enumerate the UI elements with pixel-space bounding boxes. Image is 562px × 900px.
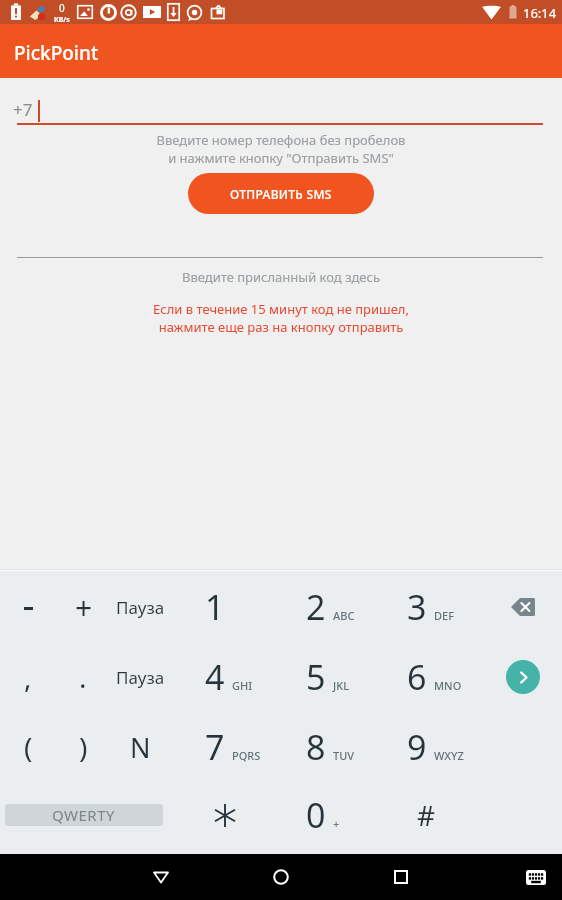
staticText: ,: [24, 658, 32, 696]
staticText: QWERTY: [52, 805, 116, 825]
button[interactable]: Пауза: [113, 575, 167, 639]
staticText: ОТПРАВИТЬ SMS: [230, 186, 332, 202]
staticText: Если в течение 15 минут код не пришел, н…: [0, 300, 562, 336]
button[interactable]: Keyboard: [516, 857, 556, 897]
staticText: 1: [205, 584, 225, 630]
button[interactable]: 2: [291, 574, 392, 640]
button[interactable]: 3: [392, 574, 493, 640]
staticText: N: [130, 729, 151, 766]
staticText: GHI: [232, 678, 253, 693]
button[interactable]: Star: [198, 783, 252, 847]
button[interactable]: Home: [252, 854, 310, 900]
staticText: Пауза: [116, 596, 165, 619]
button[interactable]: 7: [190, 714, 291, 780]
staticText: 16:14: [523, 4, 557, 22]
staticText: PickPoint: [14, 40, 99, 66]
button[interactable]: Minus: [1, 575, 55, 639]
button[interactable]: 8: [291, 714, 392, 780]
button[interactable]: 1: [190, 574, 291, 640]
staticText: 2: [306, 584, 326, 630]
staticText: +7: [13, 98, 33, 121]
button[interactable]: QWERTY: [5, 804, 163, 826]
button[interactable]: 4: [190, 644, 291, 710]
button[interactable]: ): [56, 715, 110, 779]
staticText: ABC: [333, 608, 355, 623]
button[interactable]: N: [113, 715, 167, 779]
button[interactable]: +: [57, 575, 111, 639]
staticText: 7: [205, 724, 225, 770]
button[interactable]: .: [56, 645, 110, 709]
staticText: WXYZ: [434, 748, 464, 763]
staticText: KB/s: [54, 15, 70, 25]
button[interactable]: #: [399, 783, 453, 847]
staticText: (: [24, 728, 33, 766]
button[interactable]: Пауза: [113, 645, 167, 709]
staticText: 0: [306, 792, 326, 838]
button[interactable]: ОТПРАВИТЬ SMS: [188, 173, 374, 214]
staticText: 3: [407, 584, 427, 630]
staticText: 9: [407, 724, 427, 770]
staticText: Введите номер телефона без пробелов и на…: [0, 131, 562, 167]
staticText: #: [417, 796, 436, 834]
staticText: +: [75, 587, 93, 628]
staticText: ): [79, 728, 88, 766]
staticText: 6: [407, 654, 427, 700]
button[interactable]: ,: [1, 645, 55, 709]
button[interactable]: 9: [392, 714, 493, 780]
staticText: Введите присланный код здесь: [0, 268, 562, 286]
staticText: DEF: [434, 608, 454, 623]
staticText: MNO: [434, 678, 462, 693]
staticText: PQRS: [232, 748, 261, 763]
button[interactable]: 6: [392, 644, 493, 710]
button[interactable]: 5: [291, 644, 392, 710]
staticText: JKL: [333, 678, 350, 693]
staticText: +: [333, 816, 340, 831]
staticText: 5: [306, 654, 326, 700]
button[interactable]: Recents: [372, 854, 430, 900]
button[interactable]: Backspace: [498, 582, 548, 632]
button[interactable]: PickPoint: [0, 24, 562, 78]
staticText: .: [79, 658, 87, 696]
staticText: 0: [59, 1, 65, 15]
staticText: 4: [205, 654, 225, 700]
staticText: Пауза: [116, 666, 165, 689]
button[interactable]: Back: [132, 854, 190, 900]
button[interactable]: Go: [506, 660, 540, 694]
staticText: TUV: [333, 748, 355, 763]
staticText: 8: [306, 724, 326, 770]
button[interactable]: 0: [291, 782, 392, 848]
button[interactable]: (: [1, 715, 55, 779]
